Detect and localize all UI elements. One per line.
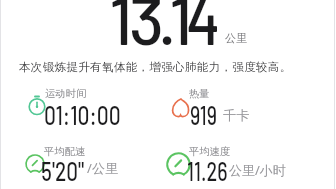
staticText: 1 [109, 0, 133, 58]
staticText: 5'20" [41, 155, 84, 186]
staticText: 运动时间 [45, 87, 87, 100]
staticText: 公里/小时 [229, 161, 286, 179]
staticText: 11.26 [187, 155, 228, 186]
staticText: 热量 [189, 87, 210, 100]
staticText: 本次锻炼提升有氧体能，增强心肺能力，强度较高。 [19, 60, 292, 74]
staticText: . [158, 0, 177, 58]
button[interactable] [27, 95, 47, 115]
staticText: 919 [190, 99, 217, 130]
button[interactable] [170, 97, 191, 118]
staticText: 千卡 [223, 107, 251, 124]
button[interactable] [25, 154, 45, 174]
staticText: /公里 [87, 159, 119, 177]
staticText: 平均速度 [189, 145, 231, 158]
staticText: 公里 [225, 31, 247, 45]
button[interactable] [166, 152, 191, 177]
staticText: 01:10:00 [44, 99, 121, 130]
staticText: 1 [169, 0, 193, 58]
staticText: 3 [129, 0, 165, 58]
staticText: 平均配速 [44, 145, 86, 158]
staticText: 4 [186, 0, 221, 58]
